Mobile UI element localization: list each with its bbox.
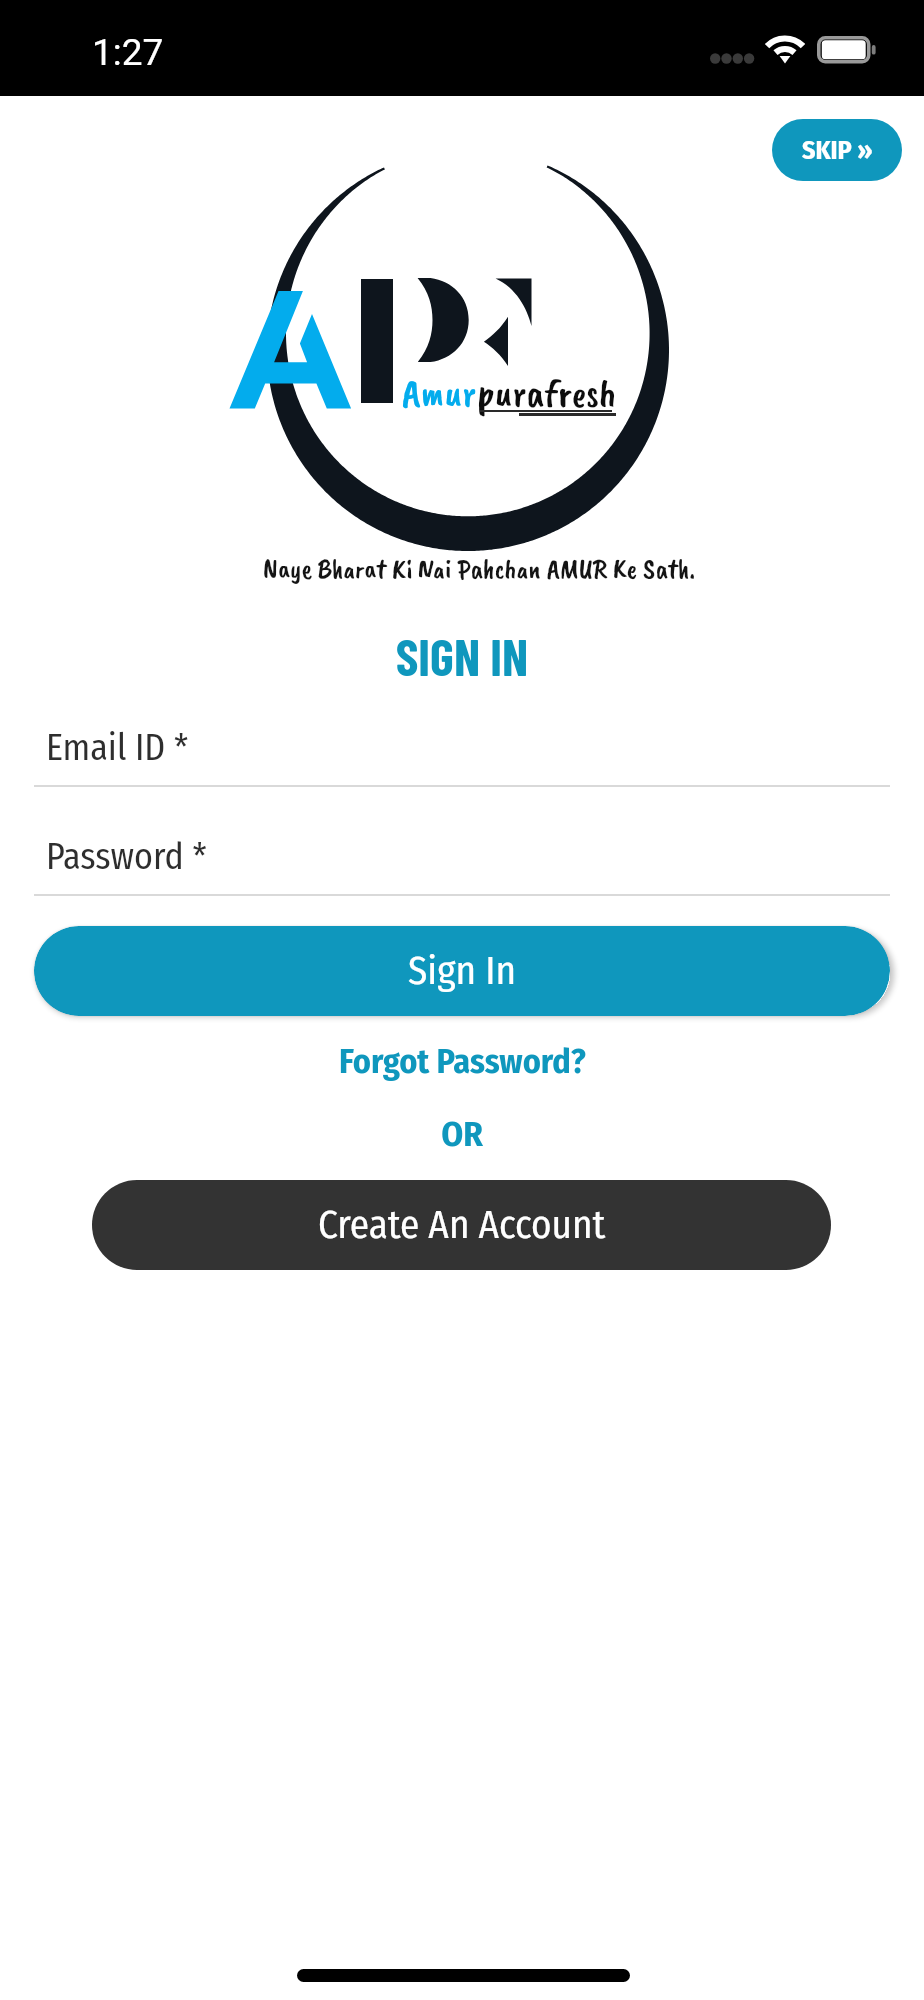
staticText: Forgot Password? (339, 1041, 586, 1082)
staticText: SIGN IN (0, 625, 924, 686)
button[interactable]: Create An Account (92, 1180, 831, 1270)
staticText: purafresh (477, 368, 617, 418)
staticText: Sign In (408, 948, 516, 995)
other: Battery (817, 36, 877, 65)
button[interactable]: Sign In (34, 926, 890, 1016)
button[interactable]: Forgot Password? (325, 1032, 600, 1091)
staticText: Create An Account (318, 1202, 606, 1249)
other: Wi-Fi (765, 34, 805, 66)
button[interactable]: SKIP » (772, 119, 902, 181)
staticText: Naye Bharat Ki Nai Pahchan AMUR Ke Sath. (17, 551, 924, 586)
staticText: Amur (402, 368, 477, 418)
staticText: SKIP » (802, 135, 873, 166)
staticText: Email ID * (46, 726, 189, 769)
staticText: Password * (46, 835, 207, 878)
staticText: OR (0, 1113, 924, 1155)
staticText: 1:27 (92, 31, 164, 74)
